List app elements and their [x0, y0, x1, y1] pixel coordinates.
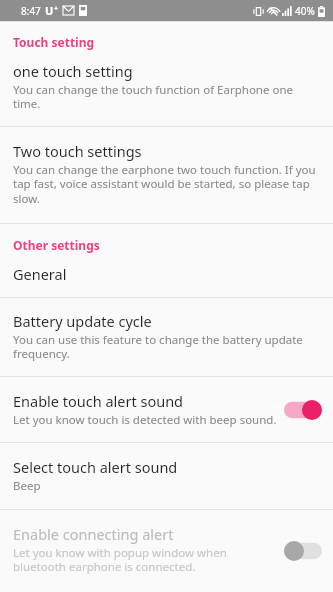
- staticText: Other settings: [13, 237, 100, 253]
- button[interactable]: Enable connecting alert: [0, 510, 333, 592]
- staticText: 8:47: [21, 4, 41, 18]
- staticText: You can change the earphone two touch fu…: [13, 162, 317, 207]
- staticText: Select touch alert sound: [13, 457, 178, 477]
- staticText: Two touch settings: [13, 141, 142, 161]
- button[interactable]: Toggle on: [283, 399, 323, 421]
- button[interactable]: General: [0, 256, 333, 297]
- staticText: +: [54, 4, 59, 14]
- staticText: U: [45, 3, 54, 18]
- staticText: Enable touch alert sound: [13, 391, 184, 411]
- button[interactable]: Enable touch alert sound: [0, 377, 333, 442]
- staticText: General: [13, 264, 67, 284]
- staticText: Let you know touch is detected with beep…: [13, 412, 277, 428]
- staticText: Battery update cycle: [13, 311, 152, 331]
- staticText: You can change the touch function of Ear…: [13, 82, 317, 112]
- staticText: one touch setting: [13, 61, 133, 81]
- button[interactable]: Two touch settings: [0, 127, 333, 223]
- button[interactable]: Select touch alert sound: [0, 443, 333, 509]
- button[interactable]: Toggle off: [283, 540, 323, 562]
- staticText: Touch setting: [13, 34, 95, 50]
- button[interactable]: Battery update cycle: [0, 298, 333, 376]
- staticText: You can use this feature to change the b…: [13, 332, 317, 362]
- button[interactable]: one touch setting: [0, 53, 333, 126]
- staticText: 40%: [295, 4, 315, 18]
- staticText: Let you know with popup window when blue…: [13, 545, 277, 578]
- staticText: Beep: [13, 478, 41, 494]
- staticText: Enable connecting alert: [13, 524, 174, 544]
